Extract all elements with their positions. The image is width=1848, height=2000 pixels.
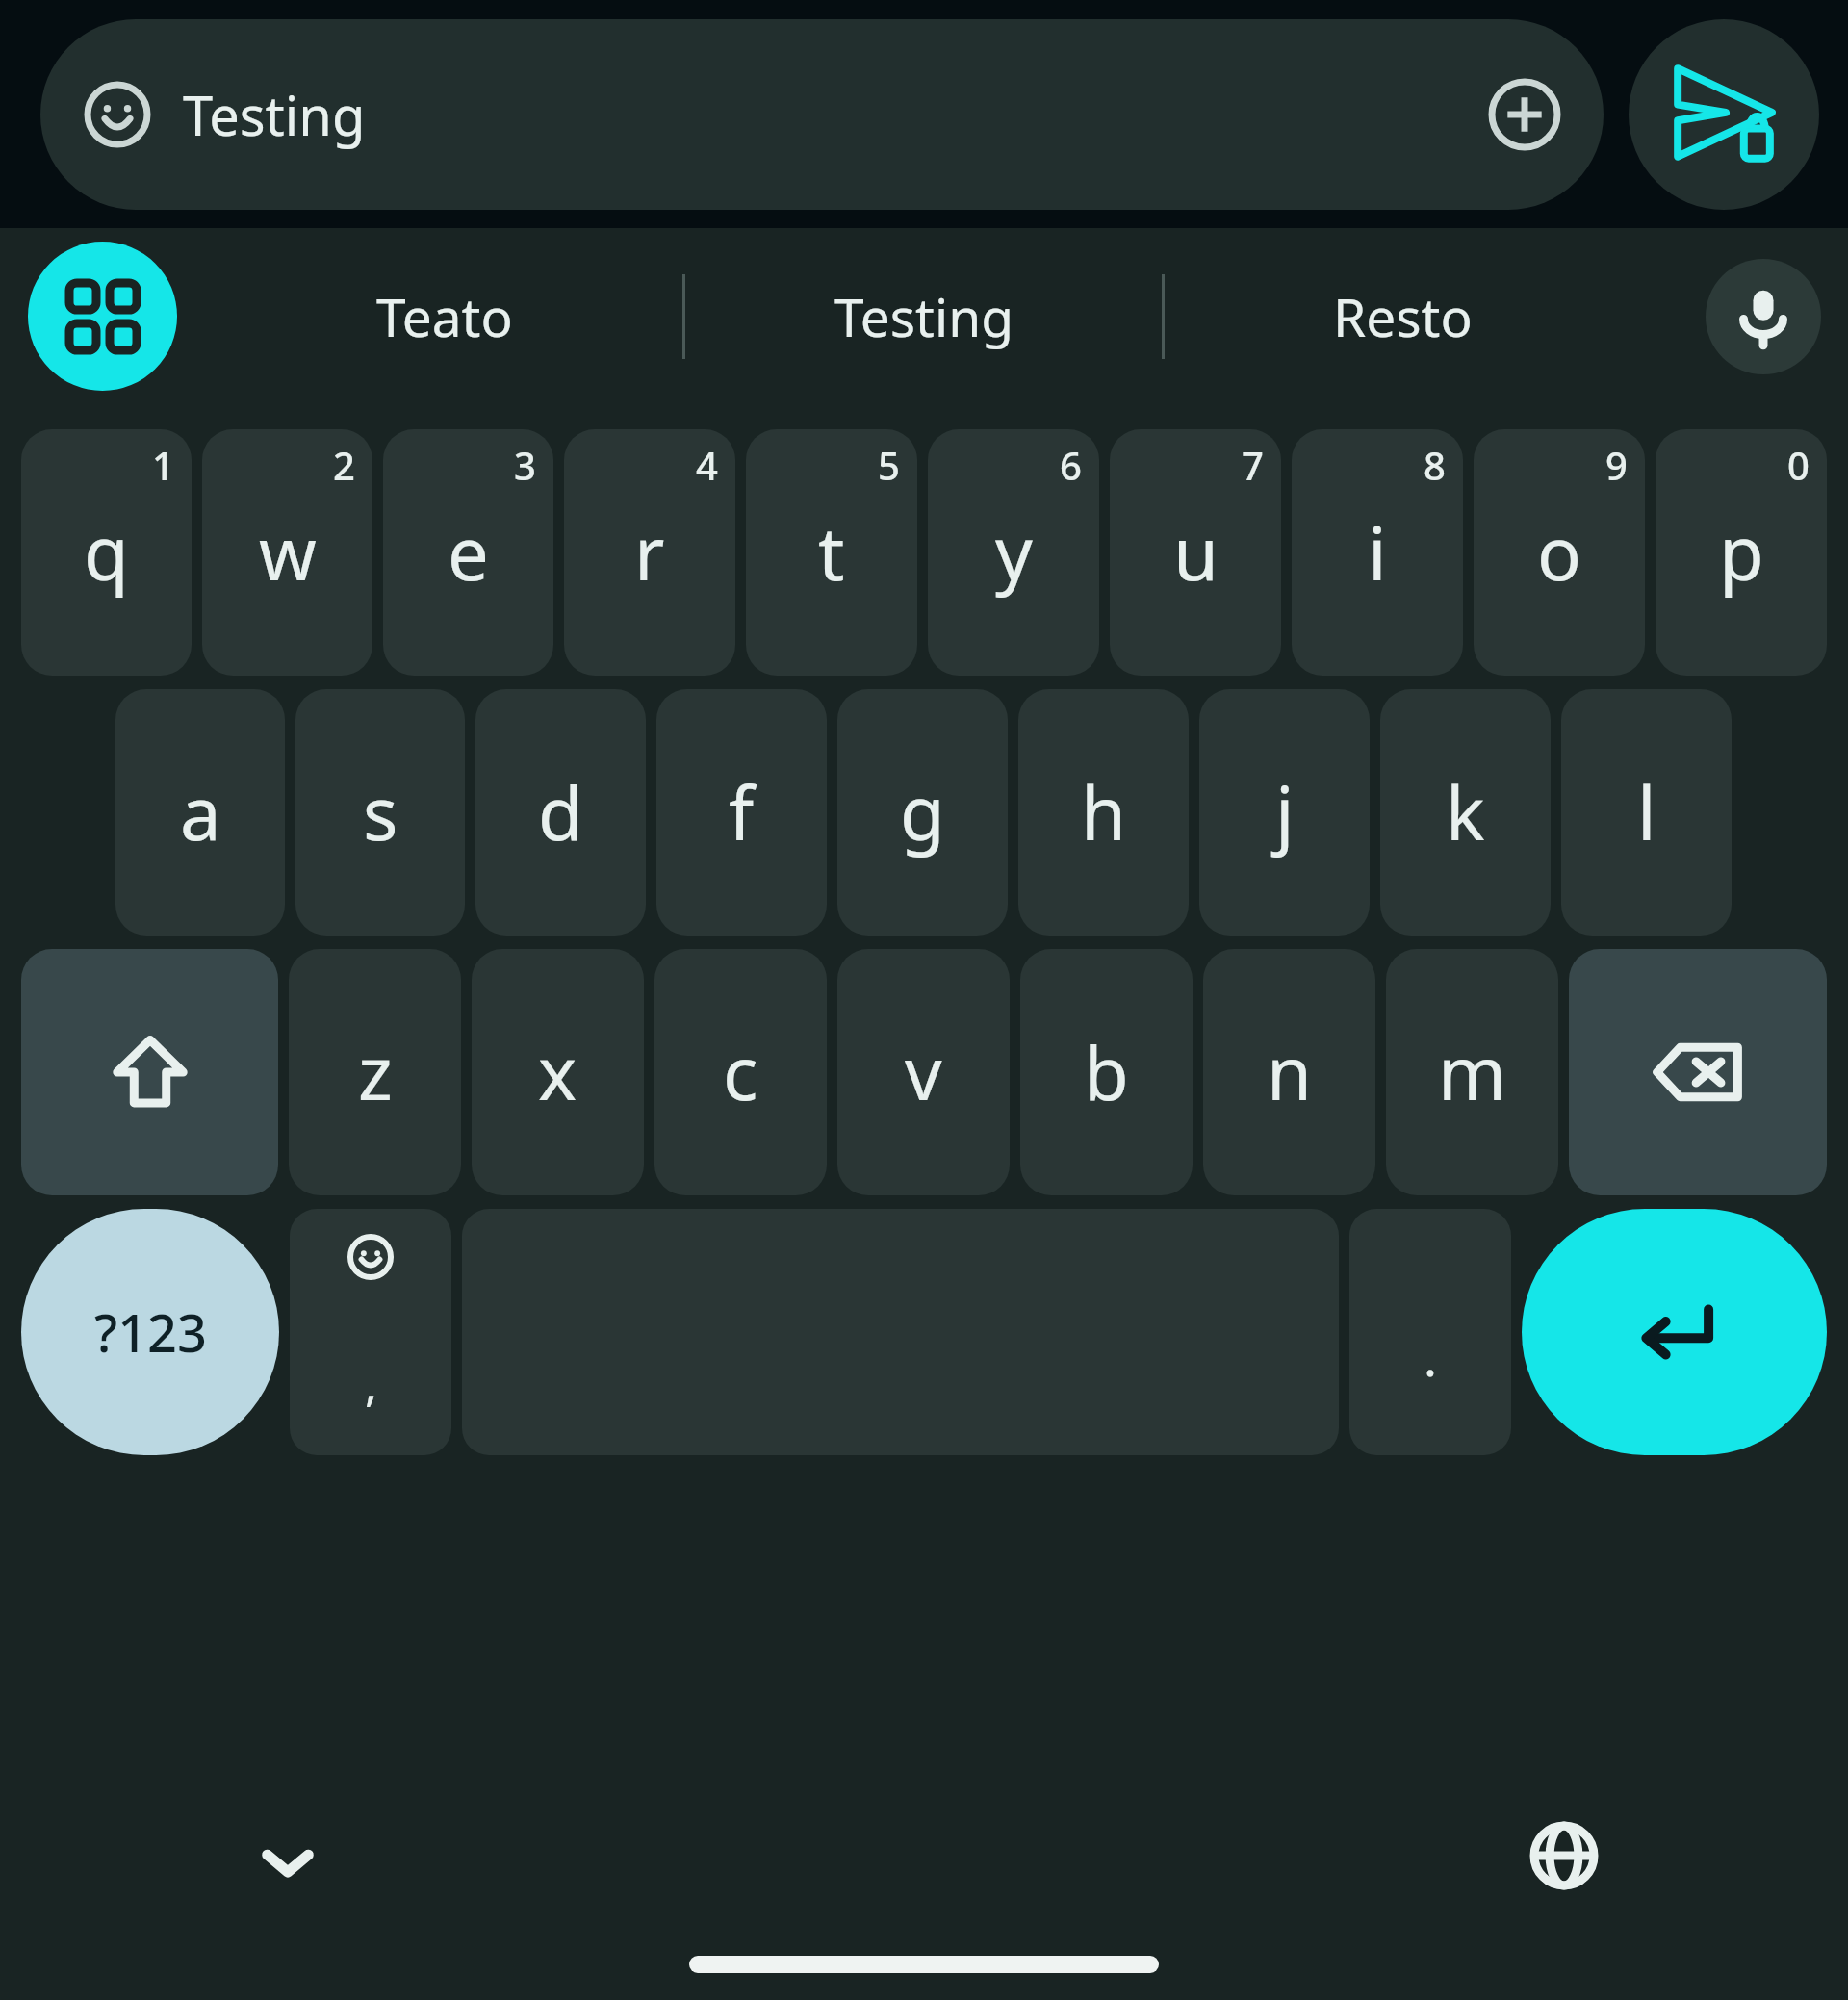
button[interactable]: v	[837, 949, 1010, 1195]
button[interactable]: Change language	[1511, 1803, 1617, 1909]
button[interactable]: Emoji and comma	[290, 1209, 451, 1455]
button[interactable]: 3	[383, 429, 553, 676]
button[interactable]: c	[654, 949, 827, 1195]
button[interactable]: g	[837, 689, 1008, 936]
button[interactable]: 8	[1292, 429, 1463, 676]
staticText: s	[363, 762, 398, 862]
staticText: 5	[878, 439, 900, 491]
button[interactable]: h	[1018, 689, 1189, 936]
staticText: k	[1446, 762, 1485, 862]
staticText: h	[1081, 762, 1126, 862]
button[interactable]: 0	[1655, 429, 1827, 676]
staticText: 9	[1605, 439, 1628, 491]
button[interactable]: Add attachment	[1484, 74, 1565, 155]
button[interactable]: 7	[1110, 429, 1281, 676]
button[interactable]: d	[475, 689, 646, 936]
button[interactable]: Teato	[207, 228, 682, 404]
button[interactable]: Voice input	[1706, 259, 1821, 374]
staticText: 8	[1424, 439, 1446, 491]
button[interactable]: s	[295, 689, 465, 936]
staticText: y	[995, 502, 1033, 603]
staticText: 3	[514, 439, 536, 491]
button[interactable]: 6	[928, 429, 1099, 676]
staticText: ,	[365, 1352, 377, 1415]
button[interactable]: k	[1380, 689, 1551, 936]
staticText: d	[538, 762, 583, 862]
button[interactable]: Testing	[685, 228, 1162, 404]
staticText: 4	[696, 439, 718, 491]
staticText: o	[1537, 502, 1581, 603]
button[interactable]: ?123	[21, 1209, 279, 1455]
button[interactable]: Toolbar	[28, 242, 177, 391]
button[interactable]: Shift	[21, 949, 278, 1195]
staticText: m	[1438, 1022, 1507, 1122]
staticText: j	[1275, 762, 1295, 862]
staticText: u	[1173, 502, 1219, 603]
staticText: a	[180, 762, 221, 862]
staticText: i	[1368, 502, 1387, 603]
staticText: Teato	[376, 280, 513, 352]
staticText: e	[448, 502, 489, 603]
button[interactable]: m	[1386, 949, 1558, 1195]
staticText: Resto	[1333, 280, 1473, 352]
staticText: l	[1637, 762, 1656, 862]
button[interactable]: Enter	[1522, 1209, 1827, 1455]
staticText: v	[905, 1022, 942, 1122]
staticText: g	[900, 762, 945, 862]
staticText: x	[538, 1022, 577, 1122]
staticText: p	[1719, 502, 1764, 603]
staticText: n	[1267, 1022, 1312, 1122]
staticText: 2	[333, 439, 355, 491]
button[interactable]: f	[656, 689, 827, 936]
button[interactable]: 9	[1474, 429, 1645, 676]
staticText: 1	[152, 439, 174, 491]
staticText: w	[259, 502, 317, 603]
button[interactable]: Send encrypted	[1629, 19, 1819, 210]
button[interactable]: l	[1561, 689, 1732, 936]
button[interactable]: 4	[564, 429, 735, 676]
staticText: Testing	[834, 280, 1014, 352]
staticText: ?123	[94, 1296, 207, 1368]
button[interactable]: Hide keyboard	[236, 1810, 340, 1914]
button[interactable]: Backspace	[1569, 949, 1827, 1195]
button[interactable]: b	[1020, 949, 1193, 1195]
staticText: z	[358, 1022, 393, 1122]
button[interactable]: 2	[202, 429, 372, 676]
button[interactable]: .	[1349, 1209, 1511, 1455]
button[interactable]: Emoji	[40, 19, 1604, 210]
staticText: f	[729, 762, 755, 862]
staticText: q	[84, 502, 129, 603]
button[interactable]: 1	[21, 429, 192, 676]
staticText: r	[634, 502, 665, 603]
staticText: Testing	[183, 78, 366, 151]
staticText: 0	[1787, 439, 1809, 491]
staticText: t	[818, 502, 845, 603]
staticText: .	[1424, 1322, 1437, 1391]
button[interactable]: x	[472, 949, 644, 1195]
staticText: c	[723, 1022, 758, 1122]
staticText: b	[1084, 1022, 1129, 1122]
staticText: 7	[1242, 439, 1264, 491]
button[interactable]: a	[115, 689, 285, 936]
button[interactable]: n	[1203, 949, 1375, 1195]
button[interactable]: j	[1199, 689, 1370, 936]
button[interactable]: 5	[746, 429, 917, 676]
staticText: 6	[1060, 439, 1082, 491]
button[interactable]: Emoji	[79, 76, 156, 153]
button[interactable]: z	[289, 949, 461, 1195]
button[interactable]: Resto	[1165, 228, 1641, 404]
